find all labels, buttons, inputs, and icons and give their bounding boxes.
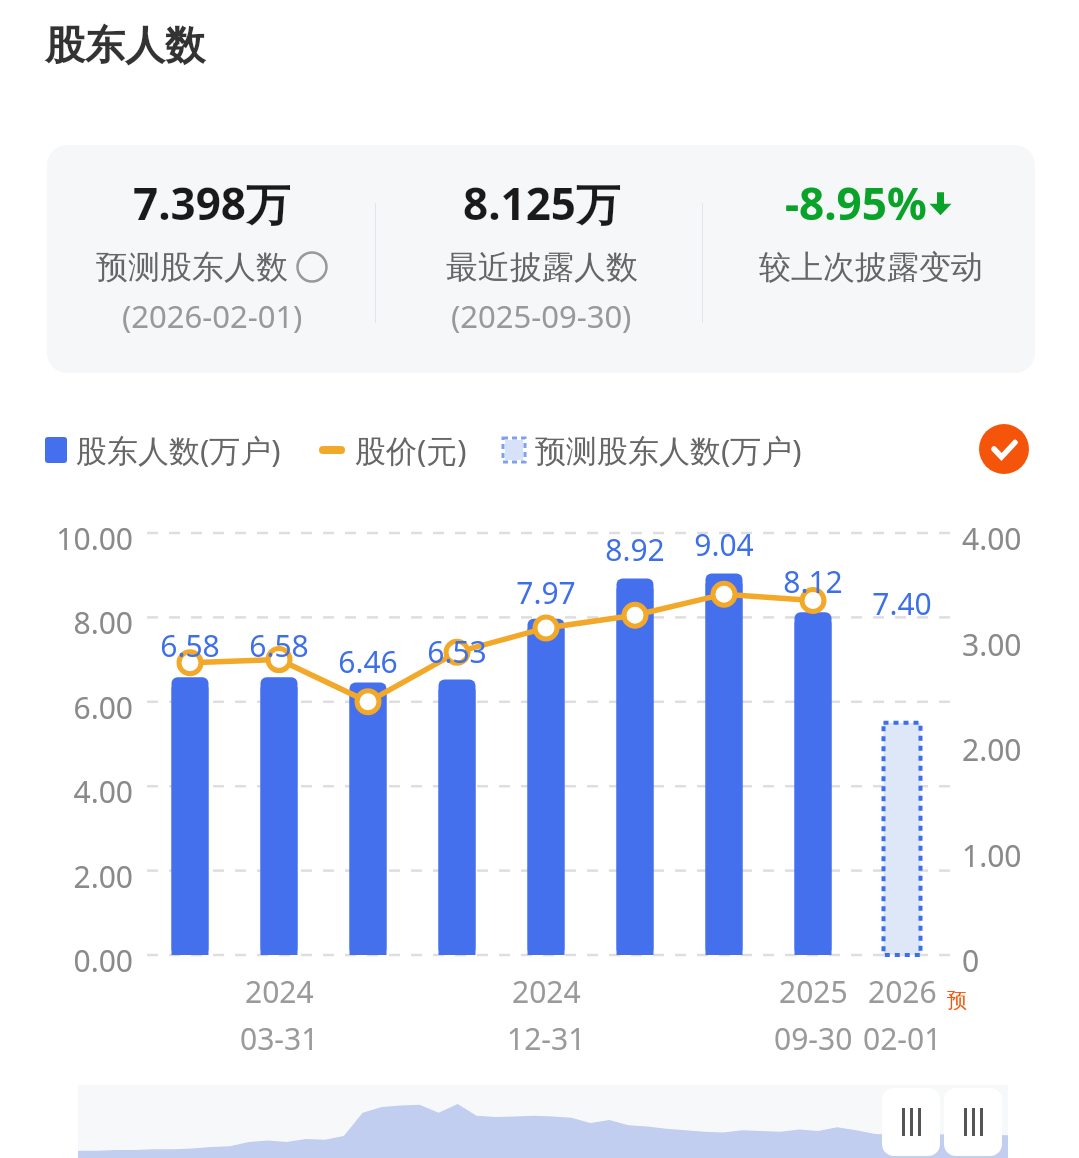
button[interactable]: 8.125万 [377, 145, 706, 373]
staticText: 7.97 [501, 572, 591, 613]
button[interactable]: -8.95% [706, 145, 1035, 373]
staticText: 10.00 [33, 518, 133, 559]
staticText: 2024 [512, 971, 581, 1012]
staticText: 8.92 [590, 529, 680, 570]
staticText: (2026-02-01) [122, 295, 303, 337]
staticText: 09-30 [774, 1018, 853, 1059]
staticText: 股价(元) [355, 429, 467, 471]
button[interactable]: Range handle [944, 1088, 1002, 1156]
staticText: 9.04 [679, 524, 769, 565]
button[interactable]: 股价(元) [319, 429, 471, 471]
staticText: 3.00 [962, 624, 1022, 665]
button[interactable]: 股东人数(万户) [45, 429, 285, 471]
staticText: 2024 [245, 971, 314, 1012]
staticText: 12-31 [507, 1018, 586, 1059]
button[interactable]: Date range selector [78, 1085, 1008, 1158]
button[interactable]: 10.00 [0, 505, 1079, 1065]
button[interactable]: 7.398万 [47, 145, 1035, 373]
staticText: 6.00 [33, 687, 133, 728]
staticText: 较上次披露变动 [759, 247, 983, 287]
staticText: 预测股东人数(万户) [535, 429, 802, 471]
staticText: 预测股东人数 [96, 247, 288, 287]
button[interactable]: Confirm selection [979, 424, 1029, 474]
staticText: 2025 [779, 971, 848, 1012]
staticText: 6.58 [234, 625, 324, 666]
staticText: -8.95% [785, 173, 927, 233]
staticText: 2026 [868, 971, 937, 1012]
staticText: 8.12 [768, 561, 858, 602]
staticText: 8.125万 [463, 173, 621, 233]
staticText: 8.00 [33, 602, 133, 643]
staticText: 0.00 [33, 940, 133, 981]
button[interactable]: 预测股东人数(万户) [503, 429, 806, 471]
staticText: 7.40 [857, 583, 947, 624]
staticText: 03-31 [240, 1018, 319, 1059]
staticText: 0 [962, 940, 980, 981]
staticText: 7.398万 [133, 173, 291, 233]
staticText: 6.46 [323, 641, 413, 682]
button[interactable]: 7.398万 [47, 145, 377, 373]
staticText: 2.00 [33, 856, 133, 897]
staticText: 02-01 [863, 1018, 942, 1059]
staticText: 预 [947, 988, 967, 1013]
staticText: 股东人数 [45, 20, 205, 70]
staticText: 4.00 [962, 518, 1022, 559]
staticText: 6.58 [145, 625, 235, 666]
staticText: 2.00 [962, 729, 1022, 770]
staticText: 最近披露人数 [446, 247, 638, 287]
staticText: (2025-09-30) [451, 295, 632, 337]
staticText: 4.00 [33, 771, 133, 812]
button[interactable]: Range handle [882, 1088, 940, 1156]
staticText: 6.53 [412, 631, 502, 672]
staticText: 1.00 [962, 835, 1022, 876]
staticText: 股东人数(万户) [76, 429, 281, 471]
